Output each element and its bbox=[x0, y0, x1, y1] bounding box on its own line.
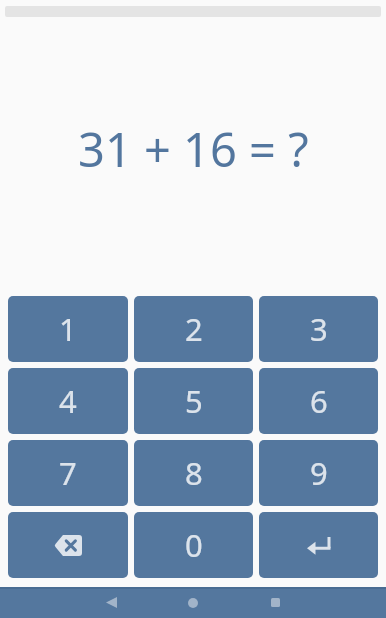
staticText: 8 bbox=[185, 452, 203, 494]
staticText: 7 bbox=[59, 452, 77, 494]
staticText: 31 + 16 = ? bbox=[78, 117, 309, 181]
button[interactable]: 6 bbox=[259, 368, 378, 434]
staticText: 3 bbox=[310, 308, 328, 350]
staticText: 9 bbox=[310, 452, 328, 494]
button[interactable]: 3 bbox=[259, 296, 378, 362]
button[interactable]: 1 bbox=[8, 296, 128, 362]
button[interactable]: 0 bbox=[134, 512, 253, 578]
button[interactable] bbox=[104, 596, 118, 609]
button[interactable]: 8 bbox=[134, 440, 253, 506]
button[interactable]: 4 bbox=[8, 368, 128, 434]
button[interactable]: 7 bbox=[8, 440, 128, 506]
staticText: 1 bbox=[59, 308, 77, 350]
button[interactable] bbox=[268, 596, 282, 609]
button[interactable]: 9 bbox=[259, 440, 378, 506]
button[interactable] bbox=[8, 512, 128, 578]
staticText: 4 bbox=[59, 380, 77, 422]
staticText: 2 bbox=[185, 308, 203, 350]
button[interactable]: 5 bbox=[134, 368, 253, 434]
staticText: 5 bbox=[185, 380, 203, 422]
staticText: 0 bbox=[185, 524, 203, 566]
button[interactable] bbox=[186, 596, 200, 609]
staticText: 6 bbox=[310, 380, 328, 422]
button[interactable] bbox=[259, 512, 378, 578]
button[interactable]: 2 bbox=[134, 296, 253, 362]
